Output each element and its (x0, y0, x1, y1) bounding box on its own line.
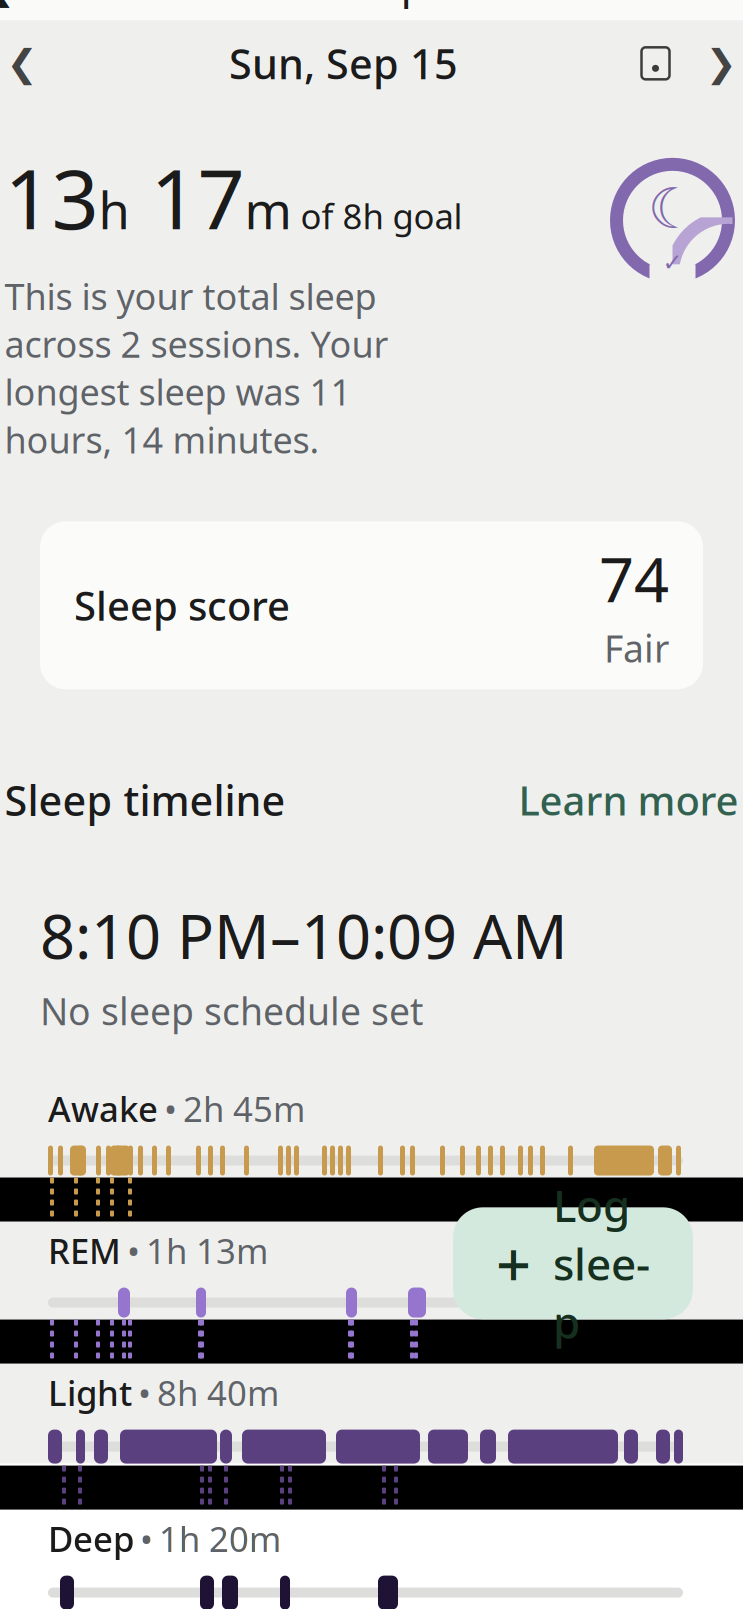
staticText: Deep (48, 1516, 134, 1562)
button[interactable]: ❮ (0, 0, 126, 21)
staticText: 13 (4, 142, 98, 252)
staticText: • (140, 1516, 153, 1562)
staticText: of 8h goal (291, 193, 462, 239)
staticText: ❮ (6, 42, 37, 84)
staticText: Sun, Sep 15 (229, 36, 458, 91)
staticText: • (138, 1370, 151, 1416)
button[interactable]: Previous day (0, 30, 55, 96)
button[interactable]: + (453, 1207, 693, 1319)
staticText: Light (48, 1370, 132, 1416)
staticText: Sleep timeline (4, 772, 285, 827)
button[interactable]: Next day (687, 30, 743, 96)
staticText: h (98, 176, 129, 243)
staticText: 1h 13m (146, 1227, 268, 1273)
staticText: 2h 45m (183, 1085, 305, 1131)
staticText: ❯ (705, 42, 736, 84)
staticText: 8:10 PM–10:09 AM (40, 894, 568, 976)
staticText: REM (48, 1227, 121, 1273)
staticText: This is your total sleep across 2 sessio… (4, 272, 388, 463)
button[interactable]: Calendar (631, 37, 679, 89)
staticText: Log sleep (553, 1176, 650, 1351)
staticText: 8h 40m (157, 1370, 279, 1416)
staticText: Sleep score (74, 579, 290, 632)
staticText: • (127, 1227, 140, 1273)
staticText: + (496, 1223, 531, 1304)
staticText: ❮ (0, 0, 16, 7)
staticText: 1h 20m (159, 1516, 281, 1562)
staticText: 17 (129, 142, 244, 252)
button[interactable]: Learn more (518, 767, 738, 832)
staticText: ✓ (662, 248, 682, 276)
staticText: Sleep (315, 0, 427, 10)
staticText: 74 (599, 538, 669, 619)
staticText: No sleep schedule set (40, 986, 423, 1035)
staticText: • (164, 1085, 177, 1131)
staticText: Awake (48, 1085, 158, 1131)
button[interactable]: Sleep score (40, 521, 703, 689)
staticText: Learn more (518, 773, 738, 826)
staticText: m (244, 176, 291, 243)
staticText: ☾ (647, 177, 697, 240)
staticText: Fair (604, 623, 669, 673)
